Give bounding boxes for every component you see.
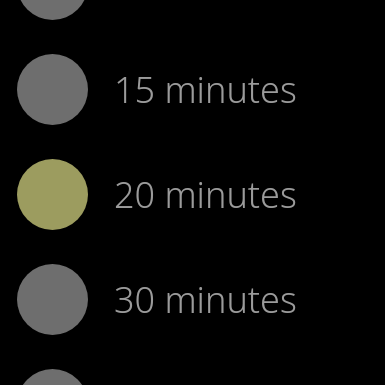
button[interactable]: 20 minutes xyxy=(0,142,385,247)
staticText: 30 minutes xyxy=(114,275,297,324)
button[interactable]: 15 minutes xyxy=(0,37,385,142)
button[interactable]: 30 minutes xyxy=(0,247,385,352)
button[interactable] xyxy=(0,352,385,385)
button[interactable] xyxy=(0,0,385,37)
staticText: 15 minutes xyxy=(114,65,297,114)
staticText: 20 minutes xyxy=(114,170,297,219)
